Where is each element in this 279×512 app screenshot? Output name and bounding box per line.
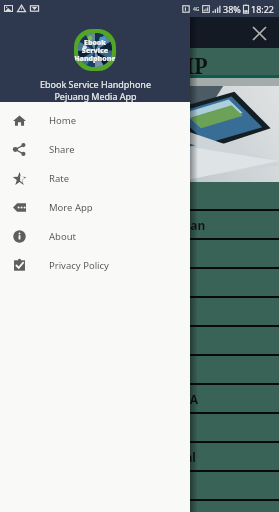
button[interactable]: About: [0, 222, 190, 251]
button[interactable]: Kerusakan Pada Ponsel: [0, 327, 279, 354]
button[interactable]: Memperbaiki Sinyal Hilang: [0, 414, 279, 441]
staticText: Privacy Policy: [49, 259, 109, 272]
staticText: Ebook Service Handphone: [74, 38, 116, 63]
staticText: Kata Pengantar: [8, 188, 102, 204]
staticText: 4G: [193, 6, 200, 13]
button[interactable]: Rate: [0, 164, 190, 193]
staticText: Ebook Service Handphone: [40, 78, 151, 90]
staticText: OK SERVICE HP TIP: [2, 52, 208, 79]
button[interactable]: Mengenal Komponen Ponsel Dan: [0, 211, 279, 238]
staticText: Rate: [49, 172, 70, 185]
staticText: Alat Service Handphone: [8, 246, 152, 262]
staticText: 18:22: [251, 3, 275, 15]
button[interactable]: Trik Memperbaiki Lcd Blank Te: [0, 472, 279, 499]
staticText: Trik Memperbaiki Lcd Blank Te: [8, 478, 191, 494]
button[interactable]: Share: [0, 135, 190, 164]
button[interactable]: Close: [247, 21, 271, 45]
button[interactable]: Memperbaiki Ponsel Tidak Adal: [0, 443, 279, 470]
button[interactable]: Membaca Skema Ponsel: [0, 298, 279, 325]
staticText: 38%: [223, 3, 241, 15]
button[interactable]: Kata Pengantar: [0, 182, 279, 209]
staticText: About: [49, 230, 76, 243]
button[interactable]: Memperbaiki Ponsel Mati Trik A: [0, 385, 279, 412]
button[interactable]: Home: [0, 106, 190, 135]
staticText: Memperbaiki Ponsel Tidak Adal: [8, 449, 196, 465]
button[interactable]: More App: [0, 193, 190, 222]
button[interactable]: Teknik Dasar Menyolder: [0, 269, 279, 296]
button[interactable]: Analisa Kerusakan Ponsel: [0, 356, 279, 383]
button[interactable]: Alat Service Handphone: [0, 240, 279, 267]
staticText: Share: [49, 143, 75, 156]
staticText: Mengenal Komponen Ponsel Dan: [8, 217, 206, 233]
staticText: More App: [49, 201, 93, 214]
staticText: Memperbaiki Ponsel Mati Trik A: [8, 391, 198, 407]
staticText: Ebook Service Handphone: [12, 24, 173, 42]
button[interactable]: Privacy Policy: [0, 251, 190, 280]
staticText: Pejuang Media App: [54, 90, 137, 102]
staticText: Home: [49, 114, 77, 127]
